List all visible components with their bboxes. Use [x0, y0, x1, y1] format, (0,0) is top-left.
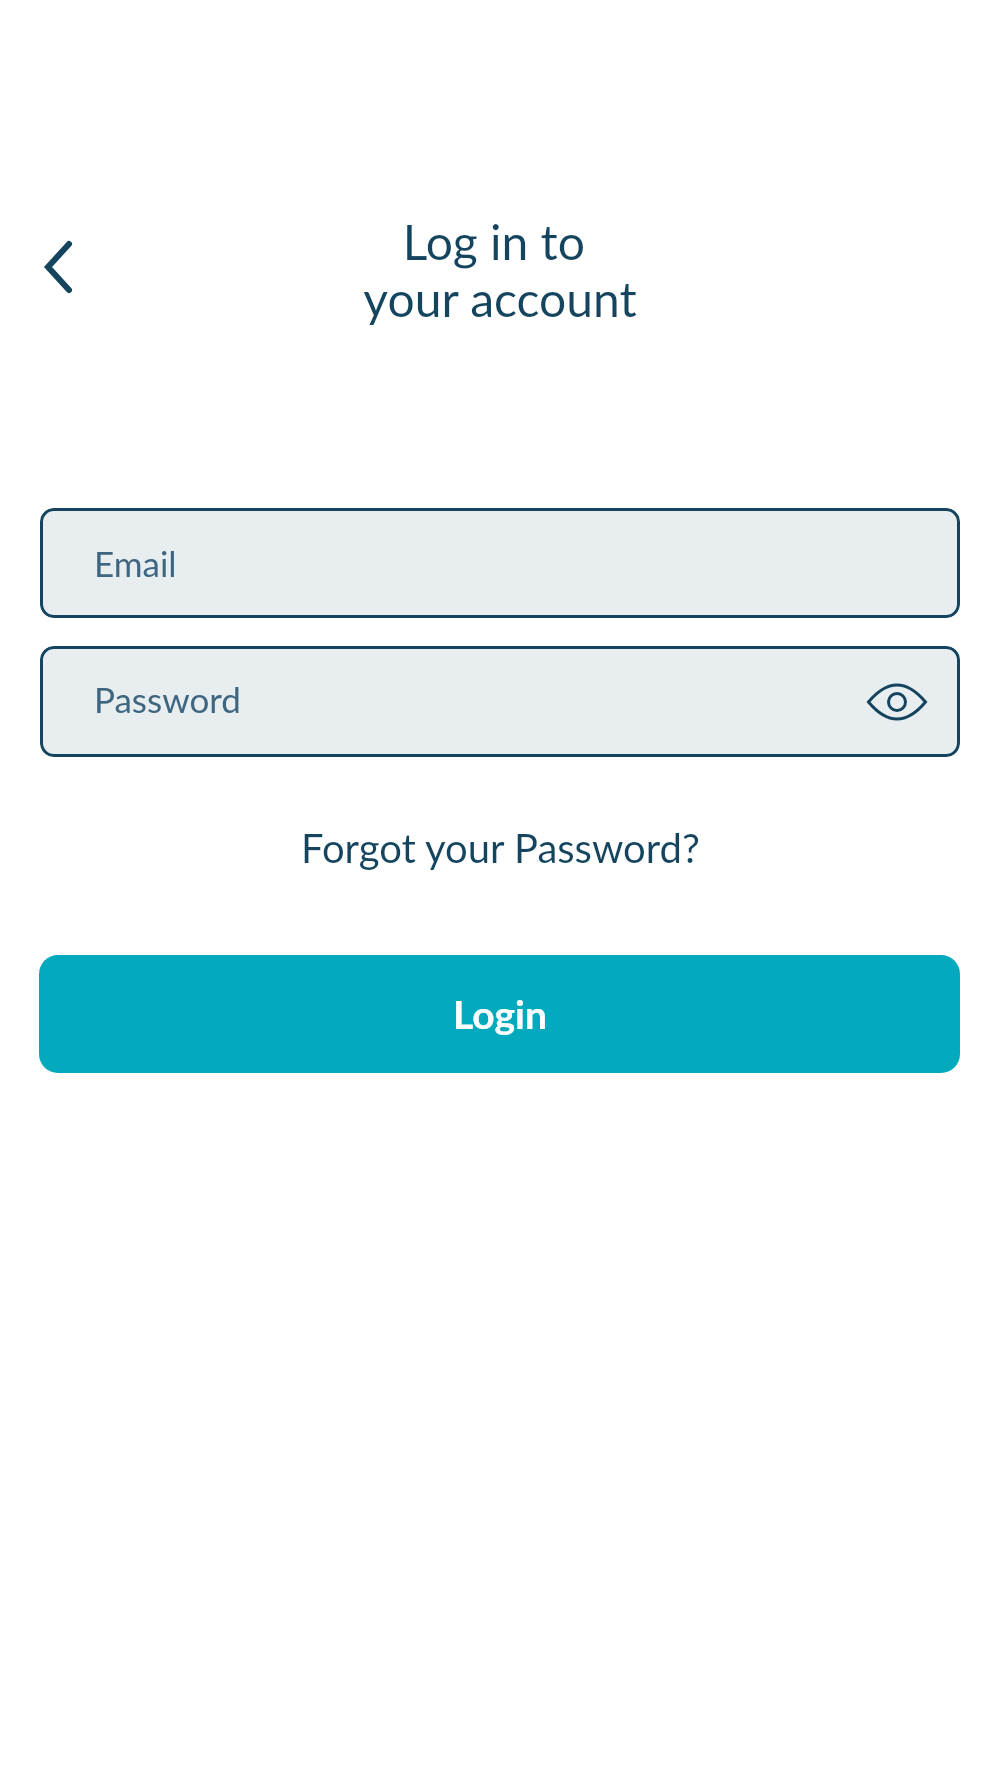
- button[interactable]: Forgot your Password?: [289, 816, 712, 880]
- staticText: Email: [94, 542, 177, 584]
- button[interactable]: Password: [40, 646, 960, 757]
- button[interactable]: Email: [40, 508, 960, 618]
- staticText: Login: [453, 991, 547, 1038]
- button[interactable]: [30, 235, 86, 299]
- button[interactable]: Login: [39, 955, 960, 1073]
- staticText: Log in to your account: [0, 213, 1000, 327]
- staticText: Password: [94, 678, 241, 720]
- staticText: Forgot your Password?: [301, 824, 700, 872]
- button[interactable]: [867, 674, 927, 730]
